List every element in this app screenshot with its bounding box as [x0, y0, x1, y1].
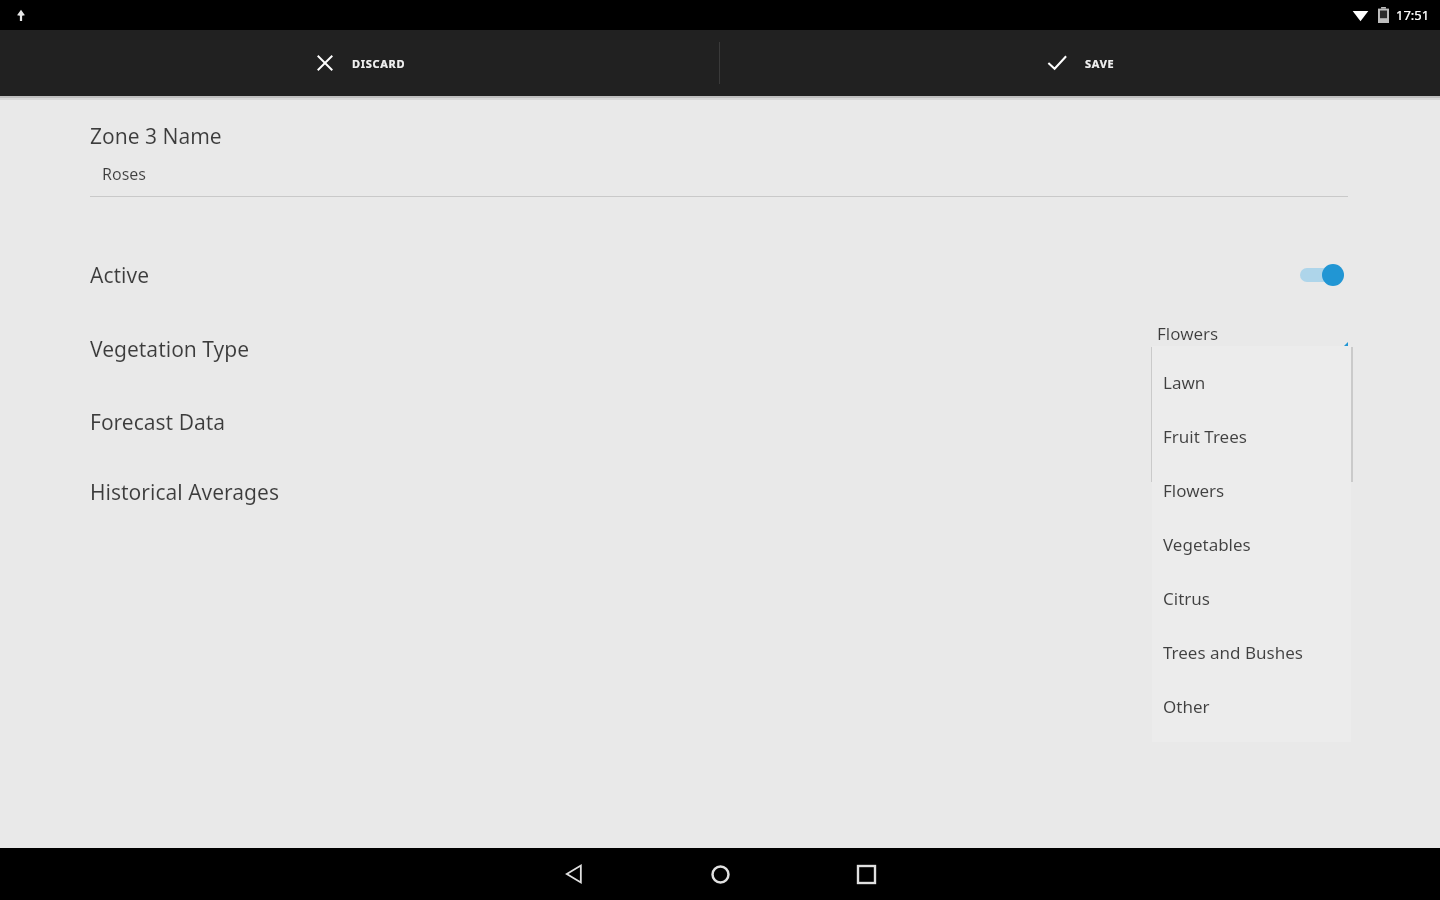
staticText: Forecast Data [90, 408, 226, 437]
staticText: Roses [102, 163, 146, 185]
staticText: Other [1163, 695, 1210, 718]
button[interactable]: Lawn [1152, 355, 1351, 409]
staticText: Active [90, 261, 150, 290]
staticText: Lawn [1163, 371, 1206, 394]
staticText: Zone 3 Name [90, 122, 222, 151]
button[interactable]: Trees and Bushes [1152, 625, 1351, 679]
button[interactable]: Fruit Trees [1152, 409, 1351, 463]
button[interactable]: Citrus [1152, 571, 1351, 625]
button[interactable]: Forecast Data [0, 398, 1440, 446]
button[interactable]: Home [672, 848, 768, 900]
staticText: SAVE [1085, 56, 1115, 71]
button[interactable]: Historical Averages [0, 468, 1440, 516]
button[interactable]: Active [0, 247, 1440, 303]
staticText: Fruit Trees [1163, 425, 1247, 448]
staticText: 17:51 [1396, 6, 1430, 24]
button[interactable]: Vegetation Type [0, 323, 1440, 375]
staticText: DISCARD [352, 56, 406, 71]
button[interactable]: Other [1152, 679, 1351, 733]
button[interactable]: Recent apps [818, 848, 914, 900]
button[interactable]: DISCARD [0, 30, 719, 96]
button[interactable]: Flowers [1152, 463, 1351, 517]
button[interactable]: Back [526, 848, 622, 900]
staticText: Trees and Bushes [1163, 641, 1303, 664]
staticText: Flowers [1157, 322, 1219, 345]
staticText: Vegetables [1163, 533, 1251, 556]
button[interactable]: Roses [90, 163, 1348, 197]
staticText: Vegetation Type [90, 335, 250, 364]
button[interactable]: Flowers [1157, 322, 1348, 362]
staticText: Citrus [1163, 587, 1210, 610]
button[interactable]: Vegetables [1152, 517, 1351, 571]
staticText: Historical Averages [90, 478, 279, 507]
staticText: Flowers [1163, 479, 1225, 502]
button[interactable]: SAVE [720, 30, 1440, 96]
